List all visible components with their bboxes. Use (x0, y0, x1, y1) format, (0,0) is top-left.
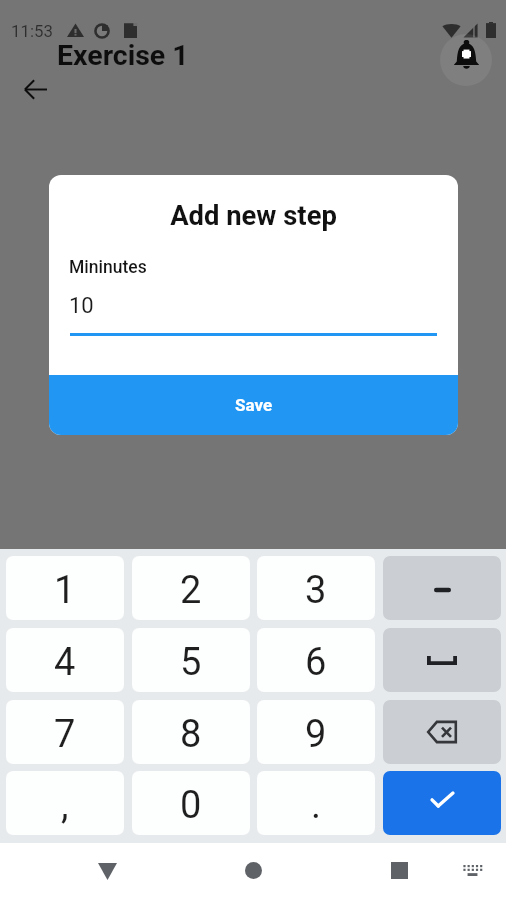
staticText: 5 (180, 640, 202, 685)
button[interactable]: 2 (132, 556, 250, 620)
button[interactable]: Space (383, 628, 501, 692)
button[interactable]: Home (230, 848, 276, 894)
staticText: Mininutes (69, 257, 147, 278)
button[interactable]: 9 (257, 700, 375, 764)
button[interactable]: Back (12, 66, 58, 112)
staticText: , (61, 783, 69, 828)
button[interactable]: Backspace (383, 700, 501, 764)
button[interactable]: . (257, 771, 375, 835)
button[interactable]: Recent apps (376, 848, 422, 894)
button[interactable]: 8 (132, 700, 250, 764)
staticText: 8 (180, 712, 202, 757)
button[interactable]: 1 (6, 556, 124, 620)
staticText: 4 (54, 640, 76, 685)
staticText: 2 (180, 568, 202, 613)
staticText: 10 (69, 293, 94, 319)
staticText: 7 (54, 712, 76, 757)
staticText: 3 (305, 568, 327, 613)
button[interactable]: 4 (6, 628, 124, 692)
staticText: Exercise 1 (57, 39, 189, 72)
button[interactable]: , (6, 771, 124, 835)
button[interactable]: 0 (132, 771, 250, 835)
staticText: 1 (54, 568, 76, 613)
button[interactable]: 5 (132, 628, 250, 692)
button[interactable]: Add reminder (440, 34, 492, 86)
staticText: 6 (305, 640, 327, 685)
button[interactable]: 3 (257, 556, 375, 620)
button[interactable]: Done (383, 771, 501, 835)
button[interactable]: 7 (6, 700, 124, 764)
button[interactable]: Hide keyboard (84, 848, 130, 894)
staticText: . (311, 783, 322, 828)
button[interactable]: 6 (257, 628, 375, 692)
staticText: 0 (180, 783, 202, 828)
staticText: Add new step (49, 200, 458, 232)
staticText: 11:53 (11, 21, 53, 41)
button[interactable]: Switch keyboard (449, 848, 495, 894)
button[interactable]: Save (49, 375, 458, 435)
button[interactable]: Minus (383, 556, 501, 620)
staticText: Save (235, 395, 273, 415)
staticText: 9 (305, 712, 327, 757)
